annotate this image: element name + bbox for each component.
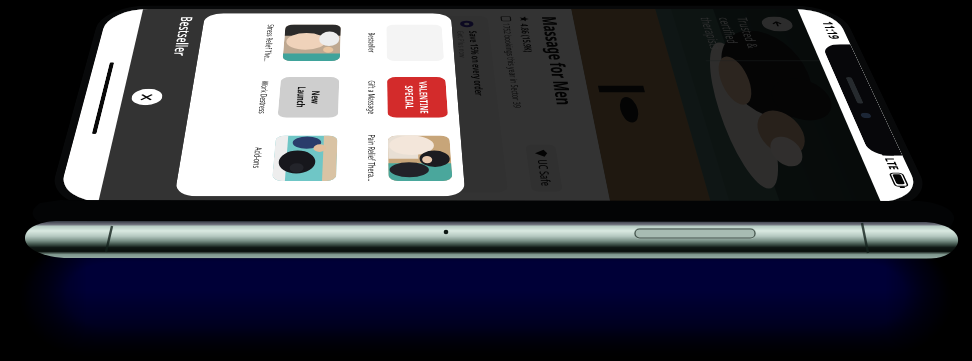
staticText: Bestseller <box>169 16 198 56</box>
staticText: VALENTINE <box>416 81 432 114</box>
staticText: Massage for Men <box>537 16 580 105</box>
button[interactable]: Add-ons <box>248 126 338 191</box>
button[interactable]: Stress Relief The... <box>261 17 341 69</box>
button[interactable]: New <box>255 69 340 126</box>
button[interactable]: Back <box>759 16 795 32</box>
staticText: Stress Relief The... <box>261 24 277 61</box>
staticText: UC Safe <box>534 159 555 186</box>
button[interactable]: Close <box>130 89 164 105</box>
button[interactable]: UC Safe <box>532 150 555 186</box>
staticText: Bestseller <box>366 32 378 52</box>
staticText: New <box>309 91 324 104</box>
staticText: Launch <box>294 86 310 108</box>
staticText: 11:19 <box>818 21 845 39</box>
staticText: Save 15% on every order <box>467 31 487 96</box>
button[interactable]: Bestseller <box>366 17 445 69</box>
button[interactable]: Save 15% on every order <box>454 21 497 186</box>
staticText: 4.86 (15.9K) <box>518 24 536 52</box>
staticText: certified <box>714 17 742 44</box>
staticText: Pain Relief Thera... <box>365 134 379 181</box>
staticText: Get upto ₹200 cashback <box>429 31 447 94</box>
staticText: 1752 bookings this year in Sector 39 <box>500 23 525 108</box>
button[interactable]: VALENTINE <box>365 69 449 126</box>
staticText: Trusted & <box>733 17 763 48</box>
button[interactable]: Get upto ₹200 cashback <box>417 21 454 186</box>
button[interactable]: Pain Relief Thera... <box>365 126 453 191</box>
staticText: Add-ons <box>250 147 265 168</box>
staticText: LTE <box>881 158 903 170</box>
staticText: Work Destress <box>256 81 272 114</box>
staticText: SPECIAL <box>402 85 417 109</box>
staticText: Valid on Mobikwik <box>418 31 432 69</box>
staticText: therapists <box>696 17 726 50</box>
staticText: Get Plus now <box>455 31 469 58</box>
staticText: Gift a Massage <box>366 80 378 114</box>
